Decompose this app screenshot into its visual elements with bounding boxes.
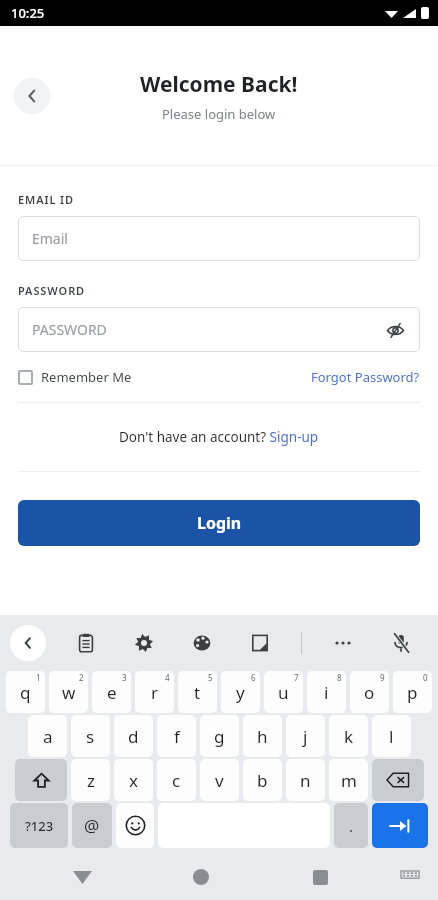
staticText: p bbox=[407, 681, 418, 704]
button[interactable]: g bbox=[200, 715, 239, 757]
staticText: 2 bbox=[79, 672, 84, 683]
button[interactable]: p bbox=[393, 671, 432, 713]
staticText: PASSWORD bbox=[32, 320, 107, 339]
button[interactable]: Recents bbox=[300, 857, 340, 897]
button[interactable]: Show password bbox=[380, 315, 410, 345]
staticText: t bbox=[194, 681, 201, 704]
staticText: 3 bbox=[122, 672, 127, 683]
button[interactable]: l bbox=[372, 715, 411, 757]
staticText: y bbox=[236, 681, 245, 704]
button[interactable]: Theme bbox=[185, 626, 219, 660]
staticText: ?123 bbox=[25, 817, 54, 835]
staticText: n bbox=[300, 769, 311, 792]
staticText: w bbox=[62, 681, 76, 704]
button[interactable]: @ bbox=[72, 803, 112, 848]
button[interactable]: n bbox=[286, 759, 325, 801]
staticText: 7 bbox=[294, 672, 299, 683]
staticText: 10:25 bbox=[11, 4, 45, 22]
button[interactable]: k bbox=[329, 715, 368, 757]
button[interactable]: Email bbox=[18, 216, 420, 261]
button[interactable]: Clipboard bbox=[69, 626, 103, 660]
button[interactable]: More options bbox=[326, 626, 360, 660]
button[interactable]: b bbox=[243, 759, 282, 801]
staticText: f bbox=[174, 725, 180, 748]
staticText: . bbox=[349, 816, 354, 836]
button[interactable]: h bbox=[243, 715, 282, 757]
staticText: Don't have an account? Sign-up bbox=[119, 428, 319, 446]
button[interactable]: Shift bbox=[15, 759, 67, 801]
button[interactable]: a bbox=[28, 715, 67, 757]
staticText: q bbox=[20, 681, 31, 704]
staticText: a bbox=[43, 725, 53, 748]
button[interactable]: Emoji bbox=[116, 803, 154, 848]
staticText: g bbox=[214, 725, 225, 748]
button[interactable]: f bbox=[157, 715, 196, 757]
button[interactable]: s bbox=[71, 715, 110, 757]
button[interactable]: x bbox=[114, 759, 153, 801]
button[interactable]: Back bbox=[14, 78, 50, 114]
staticText: 8 bbox=[337, 672, 342, 683]
staticText: EMAIL ID bbox=[18, 192, 75, 207]
button[interactable]: Forgot Password? bbox=[311, 368, 420, 386]
button[interactable]: Backspace bbox=[372, 759, 424, 801]
staticText: Welcome Back! bbox=[140, 70, 298, 99]
staticText: r bbox=[151, 681, 159, 704]
button[interactable]: Voice input off bbox=[384, 626, 418, 660]
button[interactable]: i bbox=[307, 671, 346, 713]
staticText: x bbox=[129, 769, 138, 792]
button[interactable]: Login bbox=[18, 500, 420, 546]
staticText: Remember Me bbox=[41, 368, 132, 386]
staticText: 5 bbox=[208, 672, 213, 683]
staticText: o bbox=[364, 681, 375, 704]
staticText: 1 bbox=[36, 672, 41, 683]
staticText: 6 bbox=[251, 672, 256, 683]
staticText: 0 bbox=[423, 672, 428, 683]
button[interactable]: y bbox=[221, 671, 260, 713]
staticText: m bbox=[341, 769, 357, 792]
staticText: Email bbox=[32, 229, 68, 248]
staticText: Login bbox=[197, 512, 242, 534]
button[interactable]: Resize bbox=[243, 626, 277, 660]
button[interactable]: Don't have an account? Sign-up bbox=[119, 428, 319, 446]
staticText: 4 bbox=[165, 672, 170, 683]
button[interactable]: t bbox=[178, 671, 217, 713]
staticText: @ bbox=[84, 814, 100, 837]
button[interactable]: u bbox=[264, 671, 303, 713]
button[interactable]: Settings bbox=[127, 626, 161, 660]
button[interactable]: d bbox=[114, 715, 153, 757]
staticText: i bbox=[324, 681, 329, 704]
button[interactable]: m bbox=[329, 759, 368, 801]
button[interactable]: Next bbox=[372, 803, 428, 848]
staticText: d bbox=[128, 725, 139, 748]
button[interactable]: r bbox=[135, 671, 174, 713]
button[interactable]: v bbox=[200, 759, 239, 801]
staticText: e bbox=[107, 681, 117, 704]
button[interactable]: Back bbox=[10, 625, 46, 661]
button[interactable]: c bbox=[157, 759, 196, 801]
button[interactable]: ?123 bbox=[10, 803, 68, 848]
button[interactable]: w bbox=[49, 671, 88, 713]
staticText: Please login below bbox=[162, 105, 276, 123]
button[interactable]: e bbox=[92, 671, 131, 713]
button[interactable]: z bbox=[71, 759, 110, 801]
button[interactable]: j bbox=[286, 715, 325, 757]
button[interactable]: Remember Me bbox=[18, 368, 132, 386]
staticText: z bbox=[87, 769, 95, 792]
staticText: u bbox=[278, 681, 289, 704]
button[interactable]: Home bbox=[181, 857, 221, 897]
button[interactable]: Back bbox=[62, 857, 102, 897]
staticText: l bbox=[389, 725, 394, 748]
staticText: j bbox=[303, 725, 308, 748]
staticText: b bbox=[257, 769, 268, 792]
staticText: h bbox=[257, 725, 268, 748]
button[interactable]: . bbox=[334, 803, 368, 848]
staticText: PASSWORD bbox=[18, 283, 86, 298]
button[interactable]: q bbox=[6, 671, 45, 713]
button[interactable]: PASSWORD bbox=[18, 307, 420, 352]
button[interactable]: Hide keyboard bbox=[392, 859, 428, 895]
staticText: v bbox=[215, 769, 224, 792]
staticText: c bbox=[172, 769, 181, 792]
staticText: Forgot Password? bbox=[311, 368, 420, 386]
button[interactable]: o bbox=[350, 671, 389, 713]
